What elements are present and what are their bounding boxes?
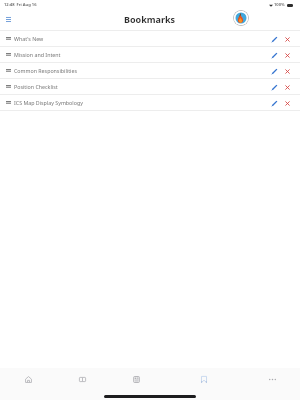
staticText: What's New bbox=[14, 35, 44, 42]
button[interactable]: Bookmarks bbox=[187, 372, 221, 386]
button[interactable]: Delete bbox=[282, 66, 292, 76]
staticText: Common Responsibilities bbox=[14, 67, 77, 74]
button[interactable]: Home bbox=[11, 372, 45, 386]
button[interactable]: Delete bbox=[282, 82, 292, 92]
button[interactable]: Edit bbox=[269, 34, 279, 44]
button[interactable]: Resources bbox=[119, 372, 153, 386]
staticText: Mission and Intent bbox=[14, 51, 61, 58]
staticText: ICS Map Display Symbology bbox=[14, 99, 83, 106]
button[interactable]: Delete bbox=[282, 98, 292, 108]
button[interactable]: Edit bbox=[269, 82, 279, 92]
button[interactable]: Common Responsibilities bbox=[0, 63, 300, 78]
button[interactable]: Edit bbox=[269, 66, 279, 76]
button[interactable]: Edit bbox=[269, 50, 279, 60]
button[interactable]: Position Checklist bbox=[0, 79, 300, 94]
button[interactable]: Menu bbox=[1, 12, 15, 26]
button[interactable]: Mission and Intent bbox=[0, 47, 300, 62]
button[interactable]: What's New bbox=[0, 31, 300, 46]
button[interactable]: Delete bbox=[282, 50, 292, 60]
button[interactable]: Guides bbox=[65, 372, 99, 386]
staticText: Position Checklist bbox=[14, 83, 58, 90]
staticText: 100% bbox=[274, 2, 285, 8]
button[interactable]: Edit bbox=[269, 98, 279, 108]
button[interactable]: Profile bbox=[233, 10, 249, 26]
button[interactable]: More bbox=[255, 372, 289, 386]
staticText: Bookmarks bbox=[124, 13, 176, 25]
button[interactable]: Delete bbox=[282, 34, 292, 44]
button[interactable]: ICS Map Display Symbology bbox=[0, 95, 300, 110]
staticText: 12:48 Fri Aug 16 bbox=[4, 2, 37, 8]
